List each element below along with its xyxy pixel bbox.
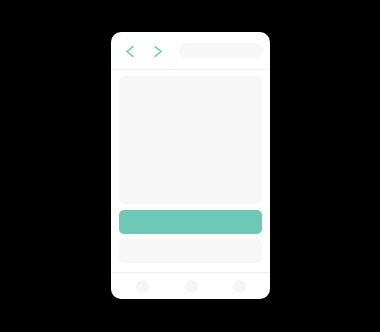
button[interactable]: Forward [148, 42, 166, 60]
button[interactable]: Discover [173, 273, 209, 299]
button[interactable]: Primary action [119, 210, 262, 234]
button[interactable]: Back [121, 42, 139, 60]
button[interactable]: Profile [221, 273, 257, 299]
button[interactable]: Home [124, 273, 160, 299]
